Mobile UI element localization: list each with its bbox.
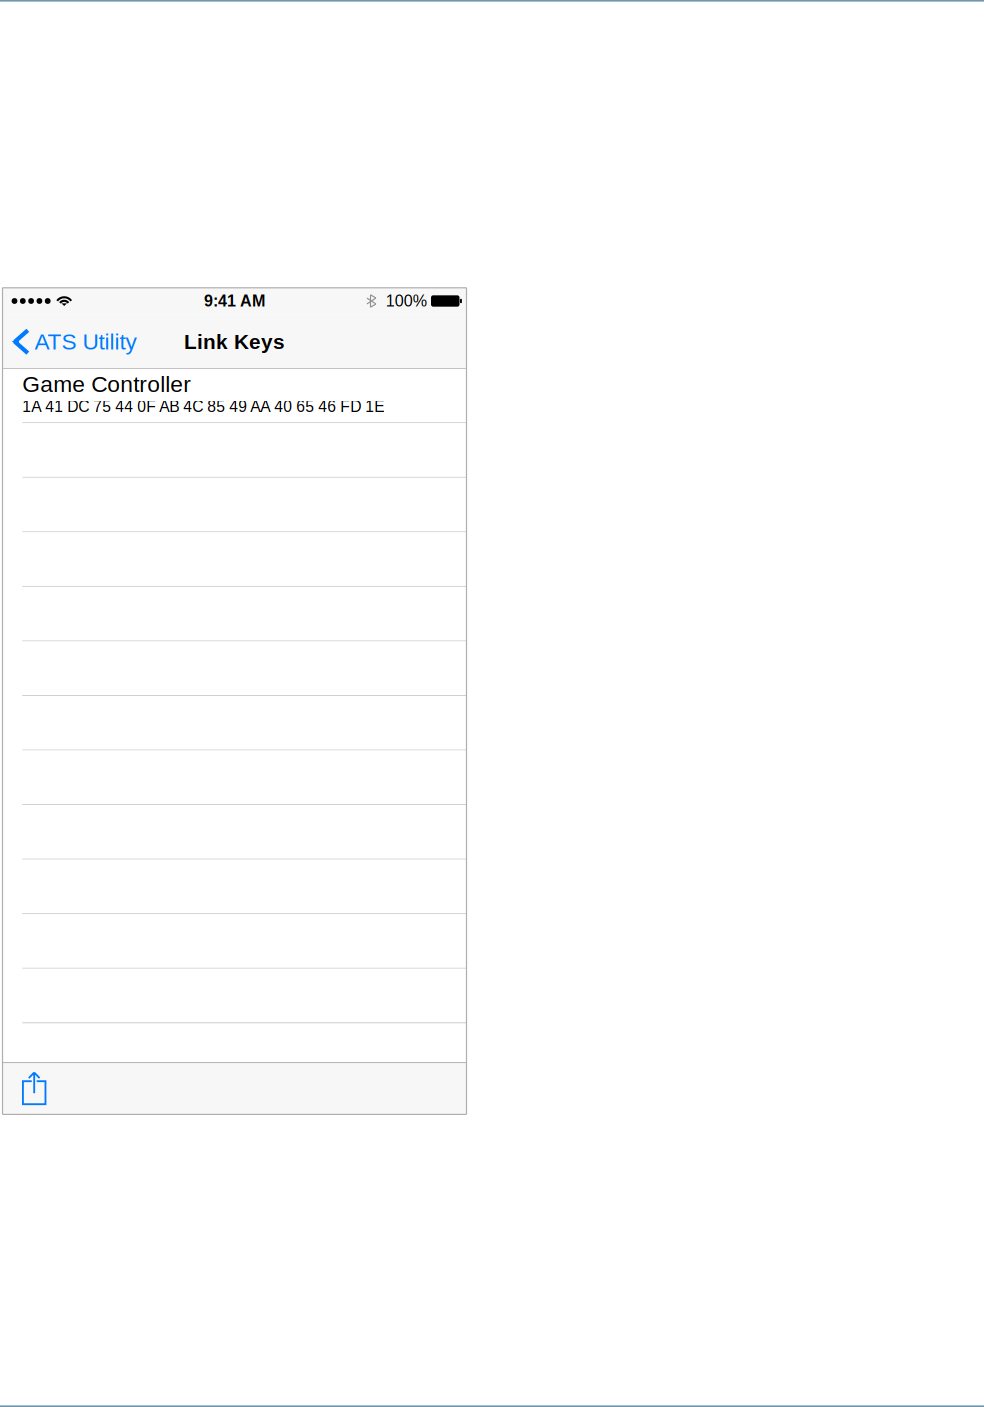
button[interactable]: Game Controller: [2, 369, 466, 422]
staticText: 1A 41 DC 75 44 0F AB 4C 85 49 AA 40 65 4…: [22, 398, 384, 415]
staticText: Link Keys: [184, 330, 285, 353]
button[interactable]: Share: [2, 1062, 60, 1114]
staticText: Game Controller: [22, 371, 191, 397]
staticText: 9:41 AM: [204, 292, 265, 310]
staticText: ATS Utility: [35, 329, 137, 354]
button[interactable]: ATS Utility: [2, 314, 145, 369]
staticText: 100%: [386, 292, 427, 310]
